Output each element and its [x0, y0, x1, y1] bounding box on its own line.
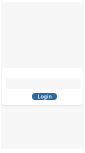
staticText: Login — [37, 93, 51, 100]
button[interactable]: Login — [32, 93, 57, 100]
